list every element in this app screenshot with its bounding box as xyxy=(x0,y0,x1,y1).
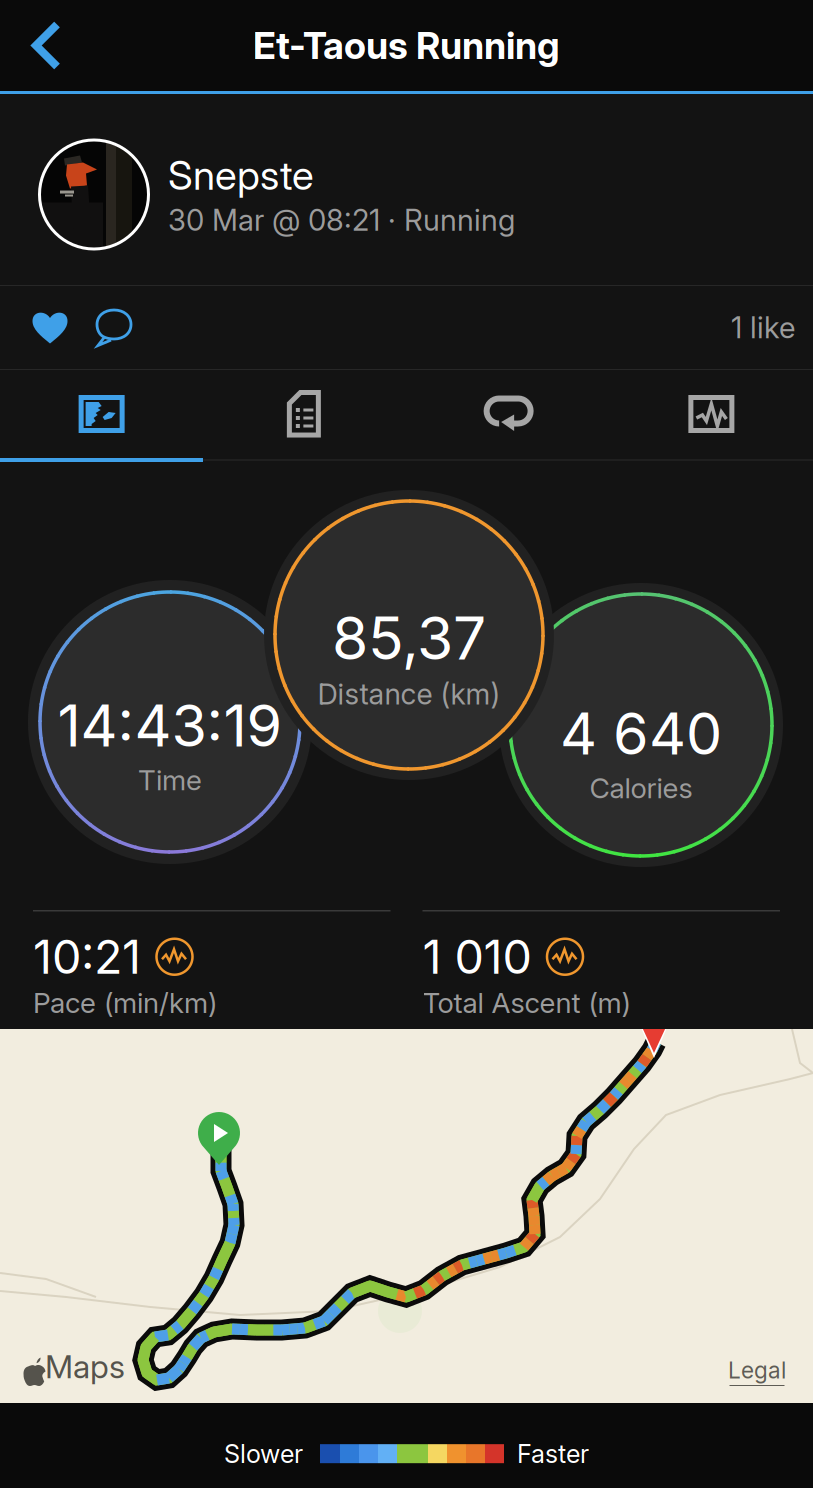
button[interactable]: Back xyxy=(0,6,63,84)
button[interactable]: Summary xyxy=(203,390,406,438)
staticText: Legal xyxy=(728,1357,786,1384)
button[interactable]: Laps xyxy=(406,395,610,433)
staticText: 1 like xyxy=(731,310,795,345)
button[interactable]: Like xyxy=(31,308,69,346)
staticText: Time xyxy=(138,763,202,797)
staticText: Et-Taous Running xyxy=(253,23,560,68)
staticText: Total Ascent (m) xyxy=(422,986,630,1020)
staticText: Slower xyxy=(224,1438,303,1469)
staticText: 1 010 xyxy=(422,928,531,985)
staticText: Pace (min/km) xyxy=(33,986,217,1020)
staticText: Distance (km) xyxy=(317,677,500,711)
staticText: 4 640 xyxy=(560,699,722,768)
staticText: 85,37 xyxy=(332,603,486,674)
staticText: Faster xyxy=(517,1438,589,1469)
staticText: 30 Mar @ 08:21 · Running xyxy=(168,202,515,238)
staticText: 10:21 xyxy=(33,928,141,985)
button[interactable]: Graphs xyxy=(610,395,813,433)
button[interactable]: Map xyxy=(0,395,203,433)
staticText: 14:43:19 xyxy=(57,691,282,760)
button[interactable]: Comment xyxy=(69,307,134,347)
staticText: Maps xyxy=(45,1347,125,1386)
staticText: Snepste xyxy=(168,151,314,199)
staticText: Calories xyxy=(589,771,692,805)
